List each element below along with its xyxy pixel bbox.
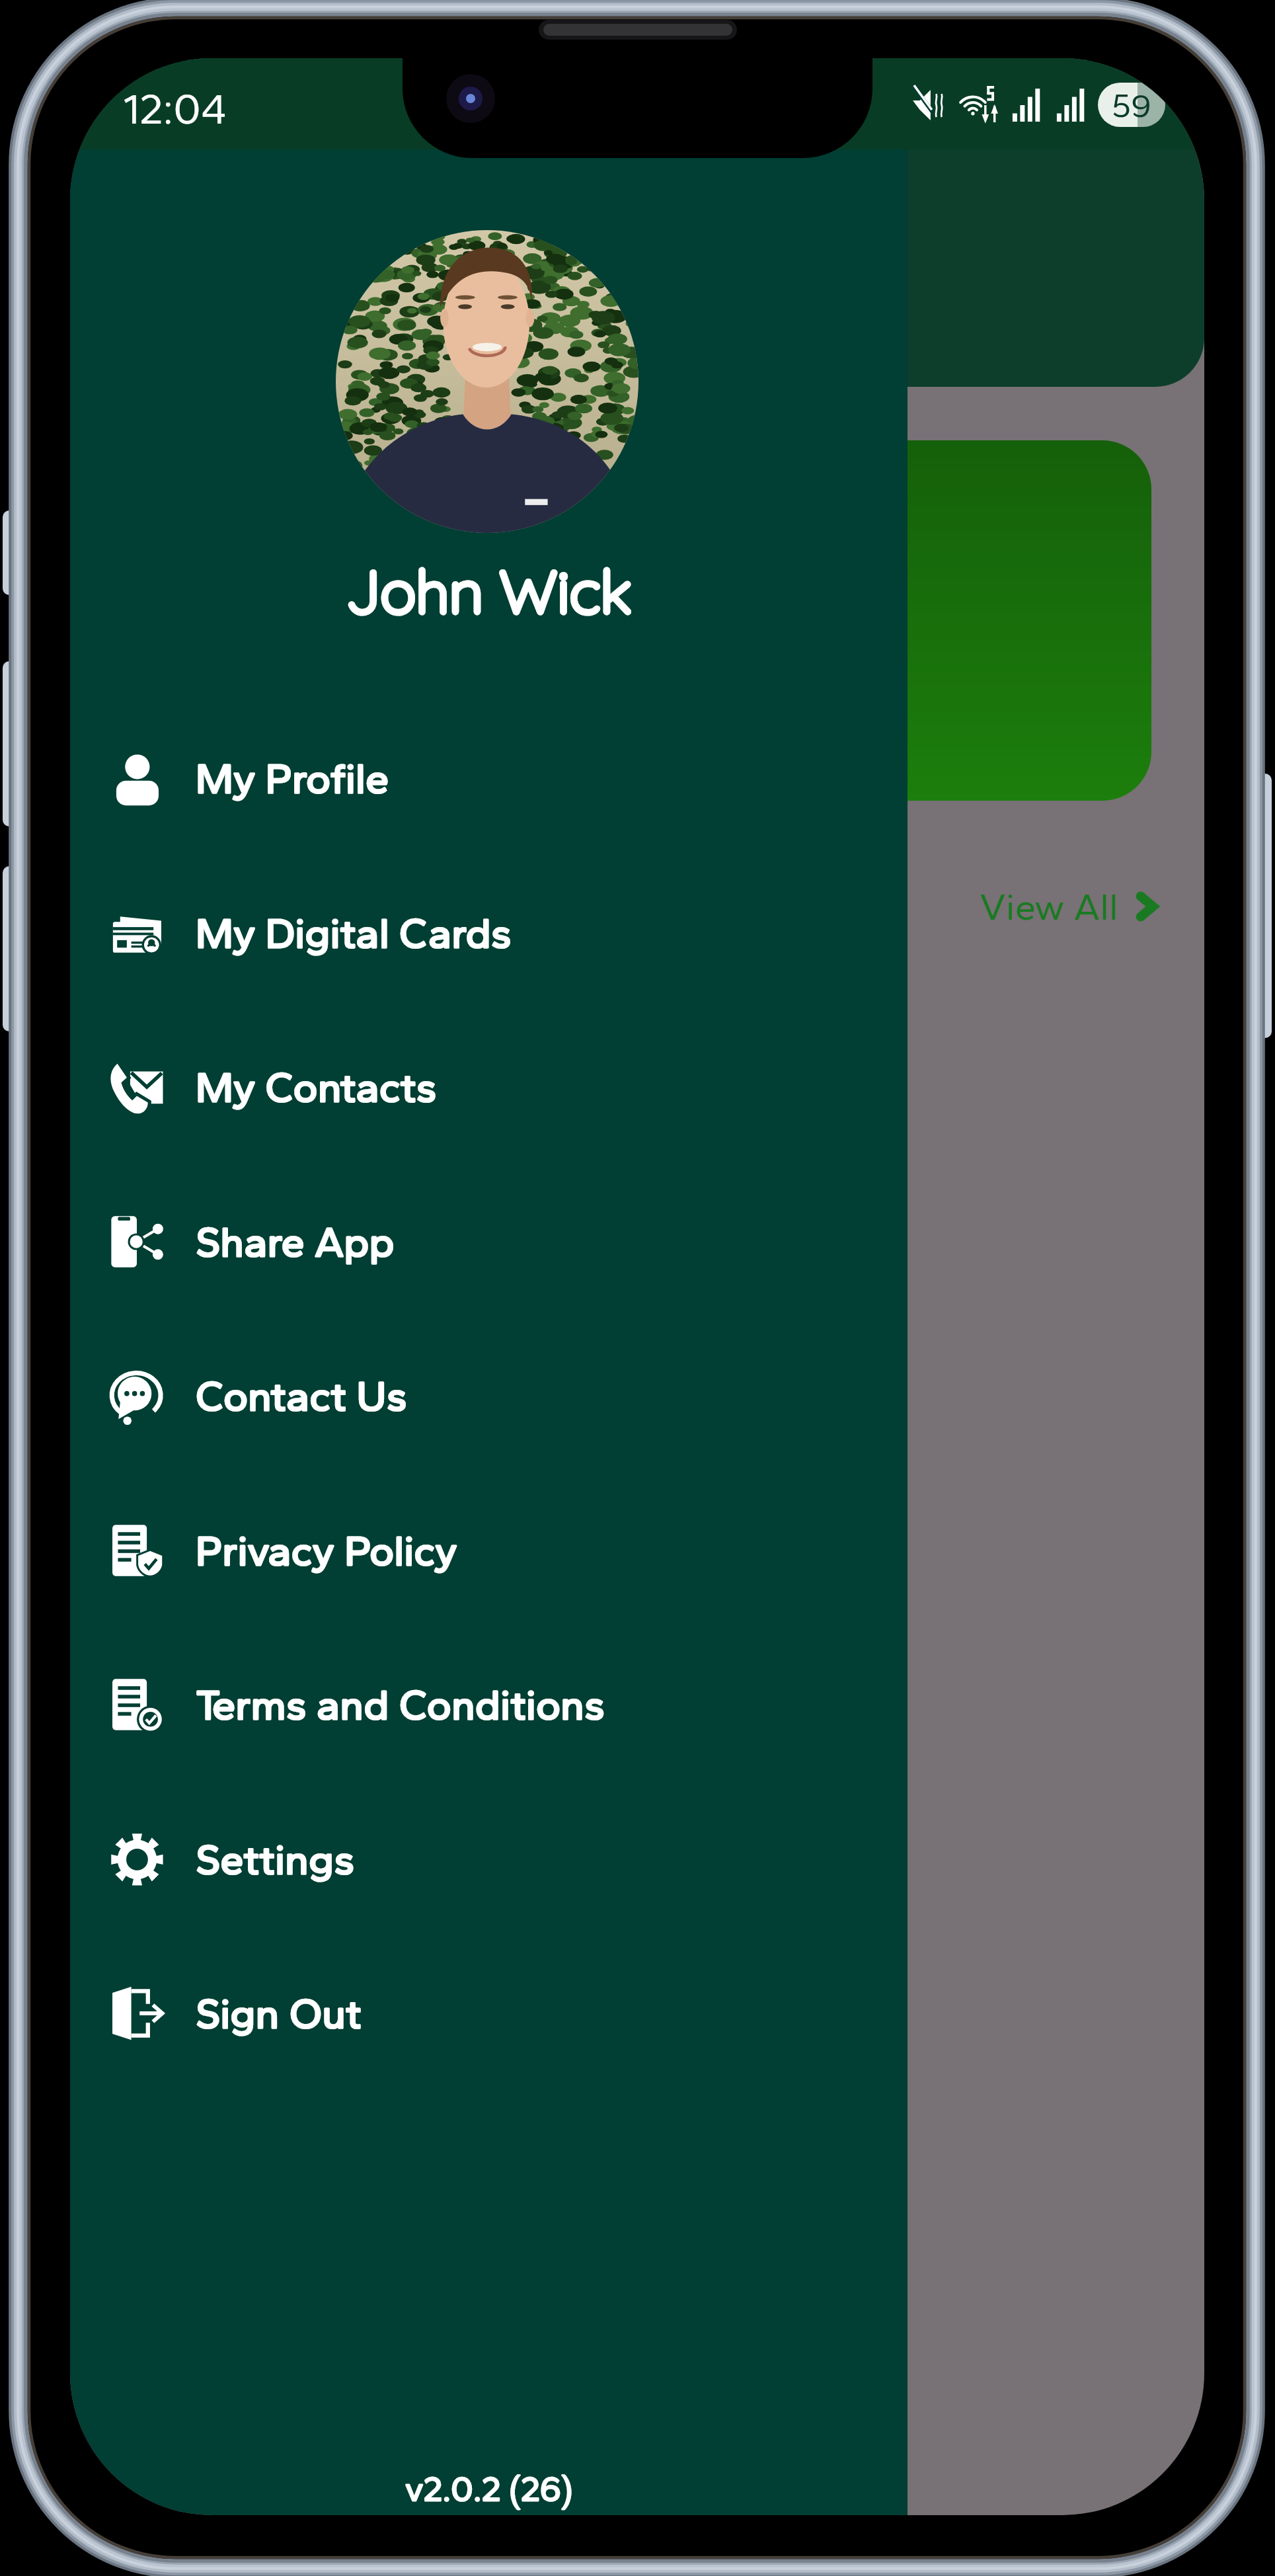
staticText: My Profile (196, 753, 389, 803)
button[interactable]: Share App (70, 1164, 908, 1319)
staticText: John Wick (70, 553, 908, 628)
staticText: View All (980, 884, 1118, 929)
staticText: Privacy Policy (196, 1525, 457, 1576)
staticText: 12:04 (123, 83, 227, 134)
staticText: Sign Out (196, 1988, 362, 2038)
button[interactable]: Contact Us (70, 1318, 908, 1473)
staticText: My Profile (196, 753, 389, 803)
staticText: Contact Us (196, 1371, 407, 1421)
staticText: Contact Us (196, 1371, 407, 1421)
staticText: My Digital Cards (196, 908, 512, 958)
staticText: 59 (1112, 85, 1151, 125)
staticText: Settings (196, 1834, 355, 1884)
button[interactable]: Settings (70, 1782, 908, 1937)
staticText: Terms and Conditions (196, 1679, 605, 1730)
button[interactable]: My Profile (70, 701, 908, 856)
button[interactable]: View All (70, 884, 1163, 929)
staticText: Share App (196, 1217, 395, 1267)
staticText: v2.0.2 (26) (405, 2468, 573, 2509)
button[interactable]: My Digital Cards (70, 856, 908, 1010)
staticText: Privacy Policy (196, 1525, 457, 1576)
staticText: My Contacts (196, 1062, 437, 1112)
button[interactable]: My Contacts (70, 1010, 908, 1164)
staticText: Sign Out (196, 1988, 362, 2038)
staticText: Share App (196, 1217, 395, 1267)
button[interactable]: Sign Out (70, 1936, 908, 2091)
staticText: My Digital Cards (196, 908, 512, 958)
staticText: My Contacts (196, 1062, 437, 1112)
staticText: John Wick (70, 553, 908, 628)
staticText: Settings (196, 1834, 355, 1884)
button[interactable]: Terms and Conditions (70, 1627, 908, 1782)
button[interactable]: Privacy Policy (70, 1473, 908, 1628)
staticText: v2.0.2 (26) (405, 2468, 573, 2509)
staticText: Terms and Conditions (196, 1679, 605, 1730)
